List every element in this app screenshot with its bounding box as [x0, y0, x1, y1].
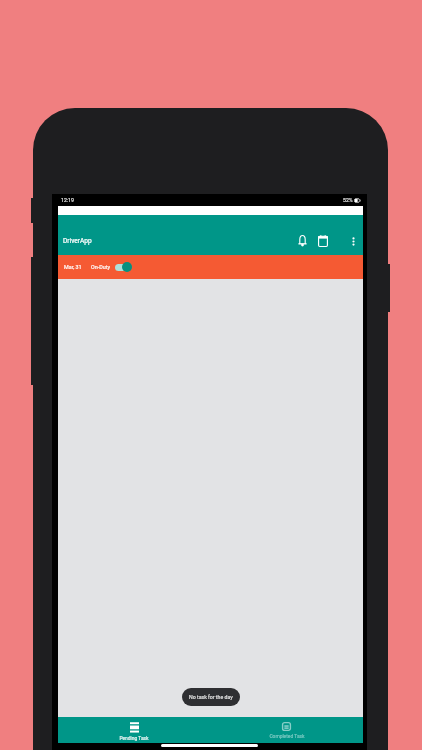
staticText: Completed Task [269, 733, 305, 739]
staticText: Pending Task [119, 735, 149, 741]
button[interactable]: On-Duty toggle [115, 260, 132, 274]
button[interactable]: Calendar [313, 231, 333, 251]
staticText: DriverApp [63, 237, 92, 245]
button[interactable]: Completed Task [210, 717, 363, 743]
staticText: 12:19 [61, 197, 74, 203]
staticText: No task for the day [189, 694, 233, 700]
staticText: On-Duty [91, 264, 110, 270]
button[interactable]: Pending Task [58, 717, 210, 743]
button[interactable]: More options [344, 232, 362, 250]
button[interactable]: Notifications [292, 231, 312, 251]
staticText: Mar, 31 [64, 264, 82, 270]
staticText: 52% [343, 197, 353, 203]
